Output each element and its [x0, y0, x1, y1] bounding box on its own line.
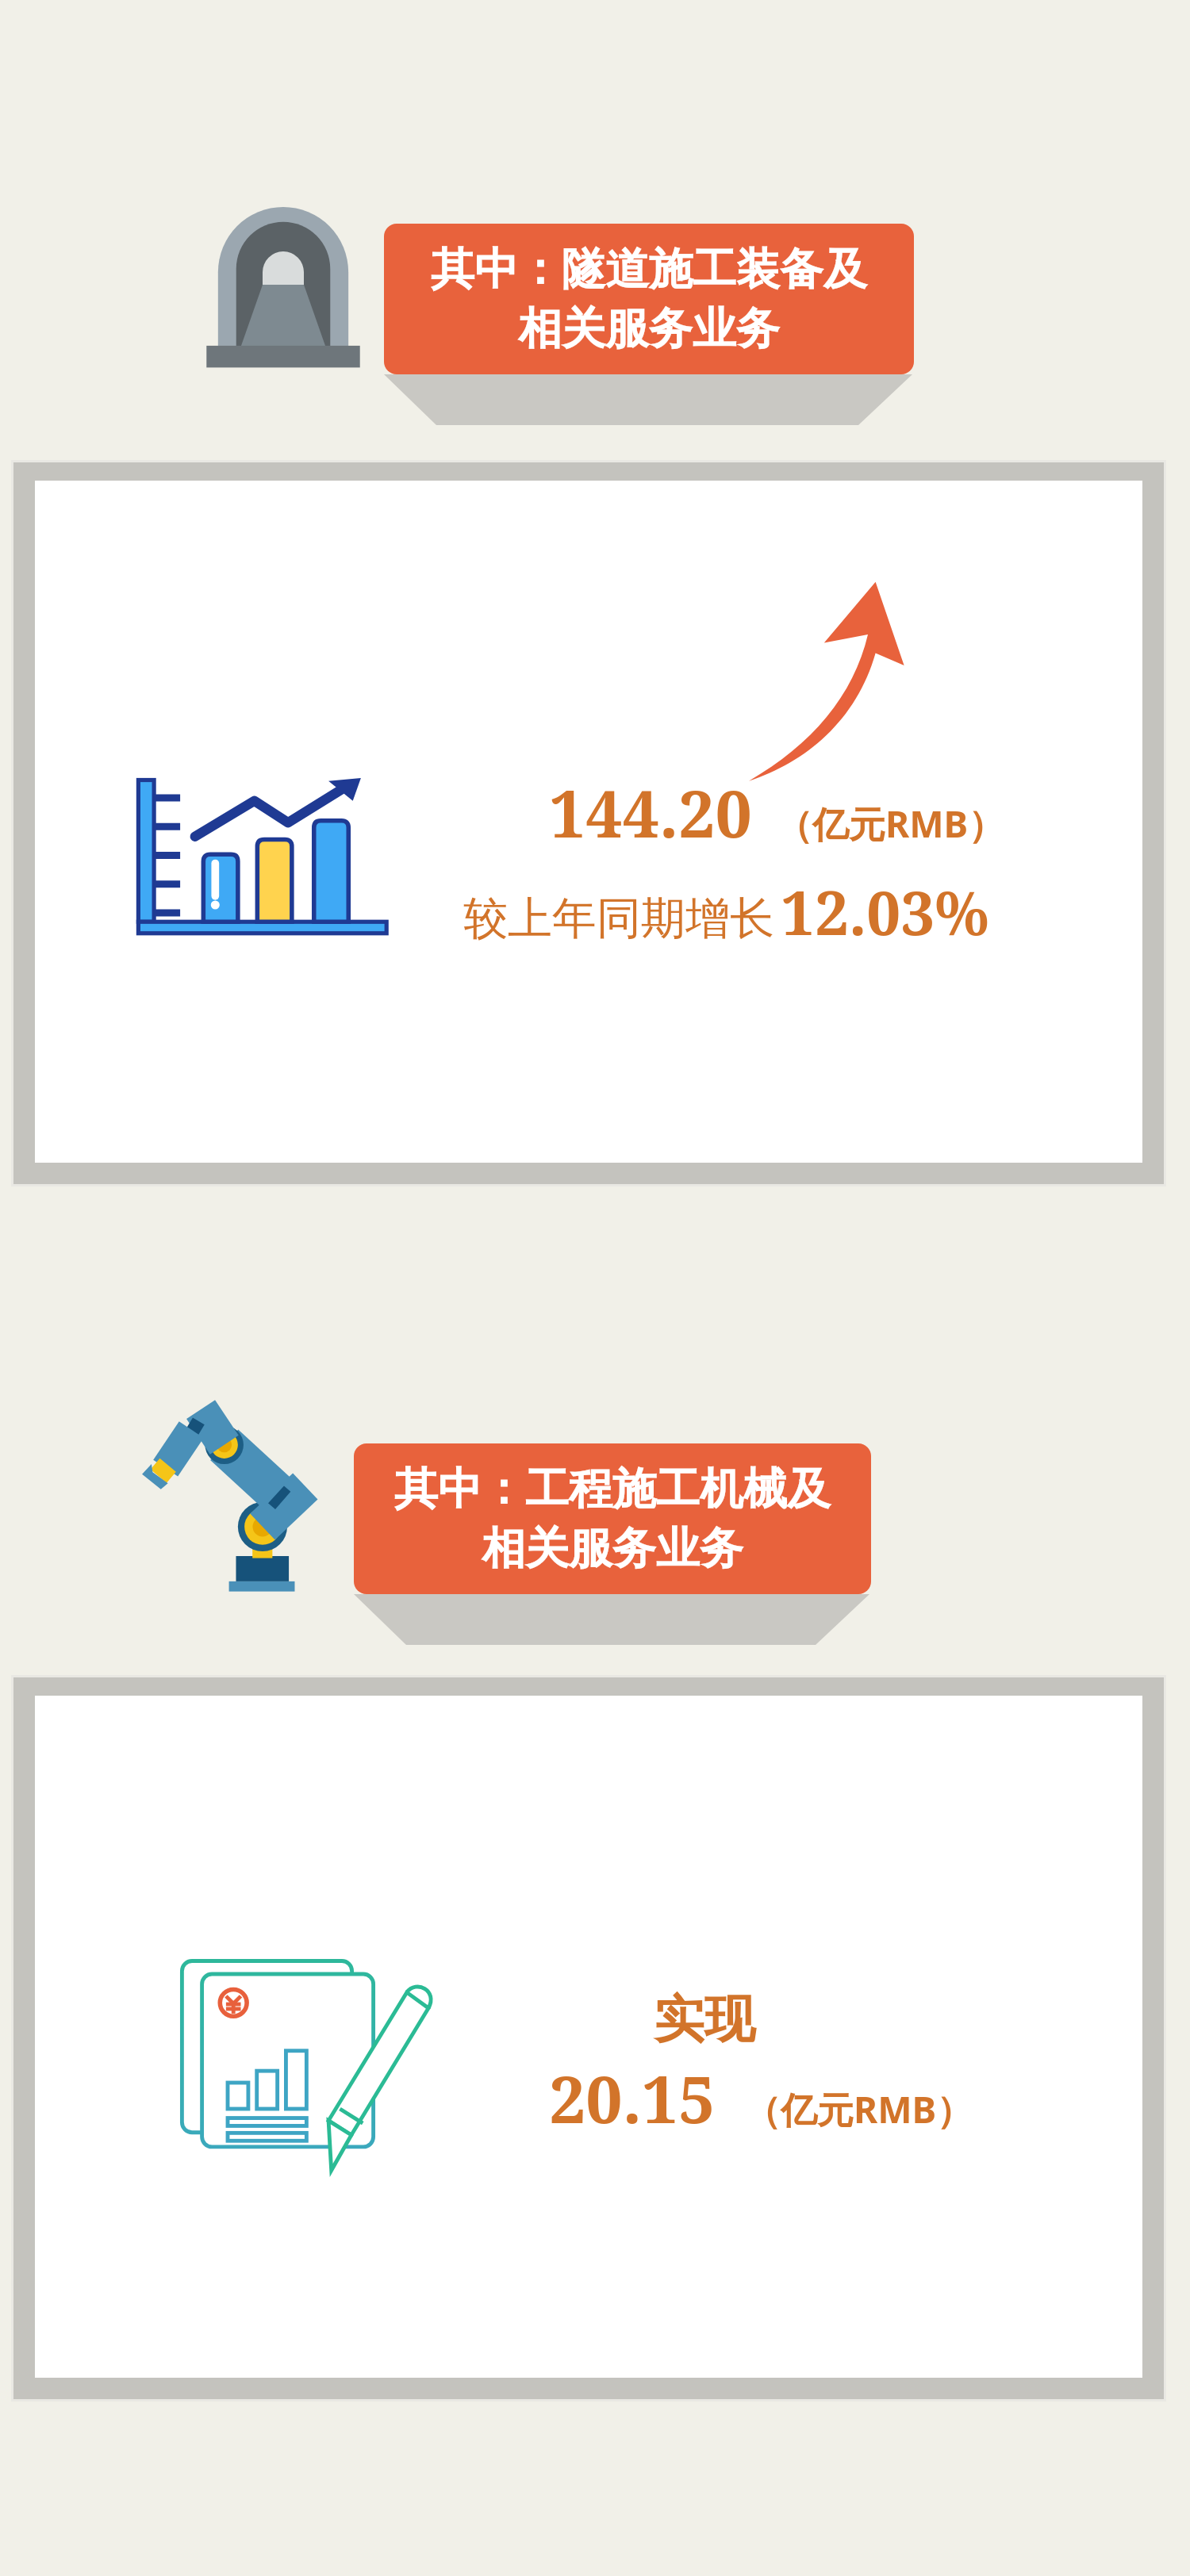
staticText: （亿元RMB） — [776, 799, 1005, 849]
staticText: 实现 — [654, 1988, 755, 2052]
staticText: 12.03% — [781, 871, 989, 953]
button[interactable]: Construction machinery robot arm — [117, 1394, 352, 1597]
staticText: 其中：隧道施工装备及 — [431, 242, 867, 297]
button[interactable]: 144.20 — [35, 481, 1142, 1163]
staticText: （亿元RMB） — [744, 2084, 973, 2134]
staticText: 144.20 — [549, 768, 752, 857]
button[interactable]: Tunnel construction equipment — [201, 198, 366, 373]
staticText: 较上年同期增长 — [463, 891, 774, 947]
staticText: 其中：工程施工机械及 — [394, 1462, 831, 1516]
staticText: 20.15 — [549, 2053, 716, 2142]
button[interactable]: 实现 — [35, 1696, 1142, 2378]
button[interactable]: 其中：工程施工机械及 — [354, 1443, 871, 1594]
staticText: 相关服务业务 — [482, 1521, 743, 1576]
staticText: 相关服务业务 — [518, 301, 780, 356]
button[interactable]: 其中：隧道施工装备及 — [384, 224, 914, 374]
